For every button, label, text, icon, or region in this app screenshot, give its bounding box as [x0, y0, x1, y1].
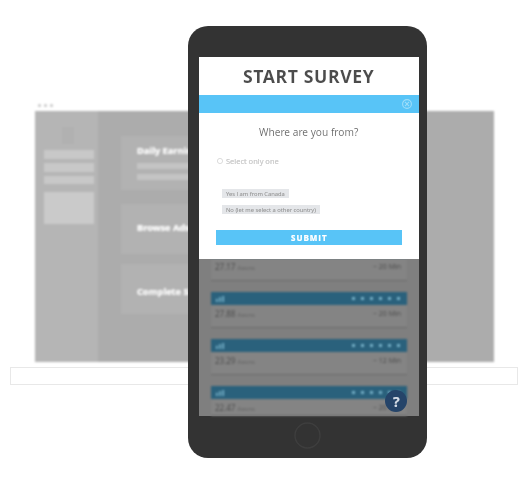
button[interactable]: Yes I am from Canada — [222, 189, 289, 198]
button[interactable]: 23.29 — [211, 339, 407, 375]
staticText: Aeons — [236, 358, 255, 366]
button[interactable]: SUBMIT — [216, 230, 402, 245]
staticText: Aeons — [236, 405, 255, 413]
staticText: 27.88 — [215, 308, 236, 319]
staticText: Browse Ads — [137, 221, 190, 234]
button[interactable]: 22.47 — [211, 386, 407, 416]
button[interactable]: Complete Surveys — [121, 264, 231, 314]
button[interactable]: Browse Ads — [121, 204, 231, 254]
button[interactable]: Daily Earnings — [121, 136, 231, 190]
button[interactable]: No (let me select a other country) — [222, 205, 320, 214]
staticText: ~ 12 Min — [373, 356, 402, 366]
staticText: Where are you from? — [259, 125, 359, 139]
staticText: Aeons — [236, 264, 255, 272]
staticText: ? — [393, 392, 400, 411]
staticText: Yes I am from Canada — [226, 190, 285, 198]
staticText: Complete Surveys — [137, 285, 219, 298]
staticText: 23.29 — [215, 355, 236, 366]
staticText: Select only one — [226, 156, 279, 166]
staticText: ~ 20 Min — [373, 309, 402, 319]
staticText: ~ 20 Min — [373, 403, 402, 413]
staticText: SUBMIT — [291, 232, 328, 243]
staticText: ~ 20 Min — [373, 262, 402, 272]
button[interactable]: 27.88 — [211, 292, 407, 328]
staticText: START SURVEY — [243, 64, 375, 88]
button[interactable]: Help — [385, 390, 407, 412]
staticText: Daily Earnings — [137, 144, 203, 157]
staticText: 27.17 — [215, 261, 236, 272]
button[interactable]: 27.17 — [211, 245, 407, 281]
button[interactable]: Close — [400, 97, 414, 111]
staticText: Aeons — [236, 311, 255, 319]
staticText: No (let me select a other country) — [226, 206, 316, 214]
staticText: 22.47 — [215, 402, 236, 413]
